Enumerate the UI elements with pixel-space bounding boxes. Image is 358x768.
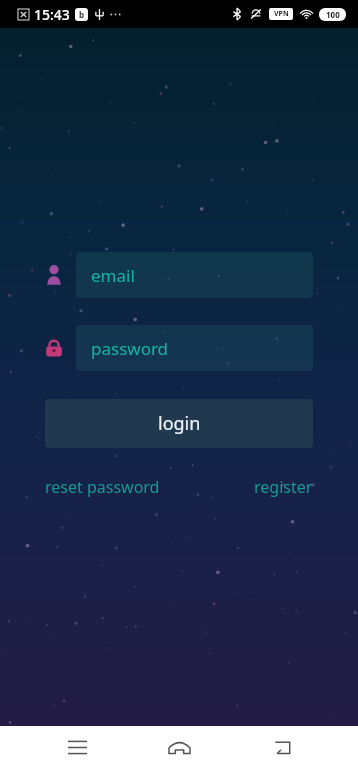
staticText: login	[158, 411, 201, 436]
button[interactable]: register	[254, 472, 313, 502]
other: Email	[43, 264, 65, 286]
other: Password	[44, 338, 64, 358]
staticText: 100	[326, 9, 340, 20]
staticText: password	[91, 337, 169, 360]
button[interactable]: email	[76, 252, 313, 298]
staticText: reset password	[45, 476, 160, 498]
button[interactable]: password	[76, 325, 313, 371]
staticText: VPN	[274, 9, 289, 19]
button[interactable]: Home	[153, 726, 205, 768]
button[interactable]: Back	[256, 726, 308, 768]
button[interactable]: login	[45, 399, 313, 448]
button[interactable]: Recents	[51, 726, 103, 768]
staticText: 15:43	[34, 5, 70, 24]
staticText: email	[91, 264, 135, 287]
staticText: register	[254, 476, 313, 498]
staticText: b	[79, 9, 85, 20]
button[interactable]: reset password	[45, 472, 160, 502]
